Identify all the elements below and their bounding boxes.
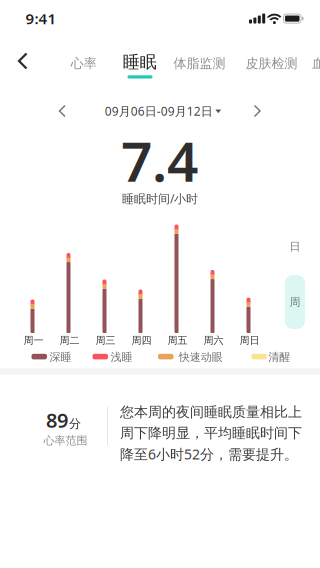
button[interactable]: 按日 (285, 236, 305, 256)
staticText: 您本周的夜间睡眠质量相比上 (120, 403, 302, 421)
button[interactable]: 下一周 (247, 101, 267, 120)
staticText: 日 (289, 240, 300, 253)
staticText: 7.4 (121, 124, 198, 197)
staticText: 体脂监测 (174, 55, 226, 71)
staticText: 清醒 (268, 350, 290, 364)
staticText: 快速动眼 (179, 350, 223, 364)
staticText: 降至6小时52分，需要提升。 (120, 445, 298, 463)
staticText: 9:41 (25, 8, 56, 28)
staticText: 血氧 (312, 55, 320, 71)
staticText: 周三 (95, 334, 115, 347)
staticText: 周一 (23, 334, 43, 347)
button[interactable]: 皮肤检测 (245, 55, 297, 71)
staticText: 周二 (59, 334, 79, 347)
button[interactable]: 体脂监测 (174, 55, 226, 71)
staticText: 心率 (71, 55, 97, 71)
staticText: 周 (289, 295, 300, 309)
button[interactable]: 心率 (71, 55, 97, 71)
button[interactable]: 血氧 (312, 55, 320, 71)
staticText: 心率范围 (43, 434, 87, 447)
staticText: 深睡 (49, 350, 71, 364)
staticText: 皮肤检测 (245, 55, 297, 71)
staticText: 89 (46, 407, 68, 433)
staticText: 分 (69, 416, 81, 431)
staticText: 周六 (203, 334, 223, 347)
staticText: 浅睡 (110, 350, 132, 364)
staticText: 周下降明显，平均睡眠时间下 (120, 424, 302, 442)
button[interactable]: 睡眠 (123, 52, 157, 72)
staticText: 周四 (131, 334, 151, 347)
button[interactable]: 上一周 (52, 101, 72, 120)
staticText: 09月06日-09月12日 (105, 103, 213, 119)
staticText: 睡眠 (123, 52, 157, 72)
staticText: 周日 (239, 334, 259, 347)
staticText: 睡眠时间/小时 (122, 190, 198, 206)
staticText: 周五 (167, 334, 187, 347)
button[interactable]: 选择日期 (105, 103, 221, 119)
button[interactable]: 返回 (11, 49, 35, 72)
button[interactable]: 按周 (285, 275, 305, 329)
